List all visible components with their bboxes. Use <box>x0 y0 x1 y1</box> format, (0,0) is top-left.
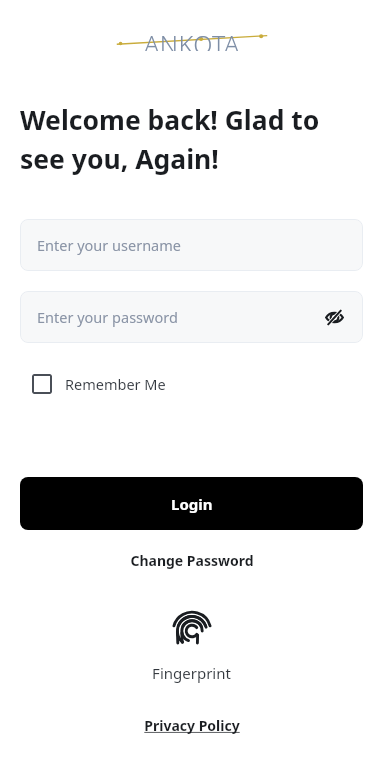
button[interactable]: Change Password <box>120 548 264 573</box>
staticText: Enter your password <box>37 307 321 327</box>
button[interactable]: Remember Me <box>20 370 178 398</box>
button[interactable]: Enter your password <box>20 291 363 343</box>
staticText: Privacy Policy <box>144 716 240 735</box>
button[interactable]: Privacy Policy <box>134 713 250 738</box>
button[interactable]: Fingerprint login <box>167 602 217 652</box>
button[interactable]: Fingerprint <box>142 660 241 686</box>
button[interactable]: Enter your username <box>20 219 363 271</box>
button[interactable]: Show password <box>321 304 347 330</box>
staticText: Fingerprint <box>152 663 231 683</box>
staticText: ANKOTA <box>144 27 240 51</box>
staticText: Change Password <box>130 551 254 570</box>
staticText: Welcome back! Glad to see you, Again! <box>20 102 320 177</box>
staticText: Enter your username <box>37 235 347 255</box>
staticText: Login <box>171 494 213 514</box>
button[interactable]: Login <box>20 477 363 530</box>
staticText: Remember Me <box>65 374 166 394</box>
